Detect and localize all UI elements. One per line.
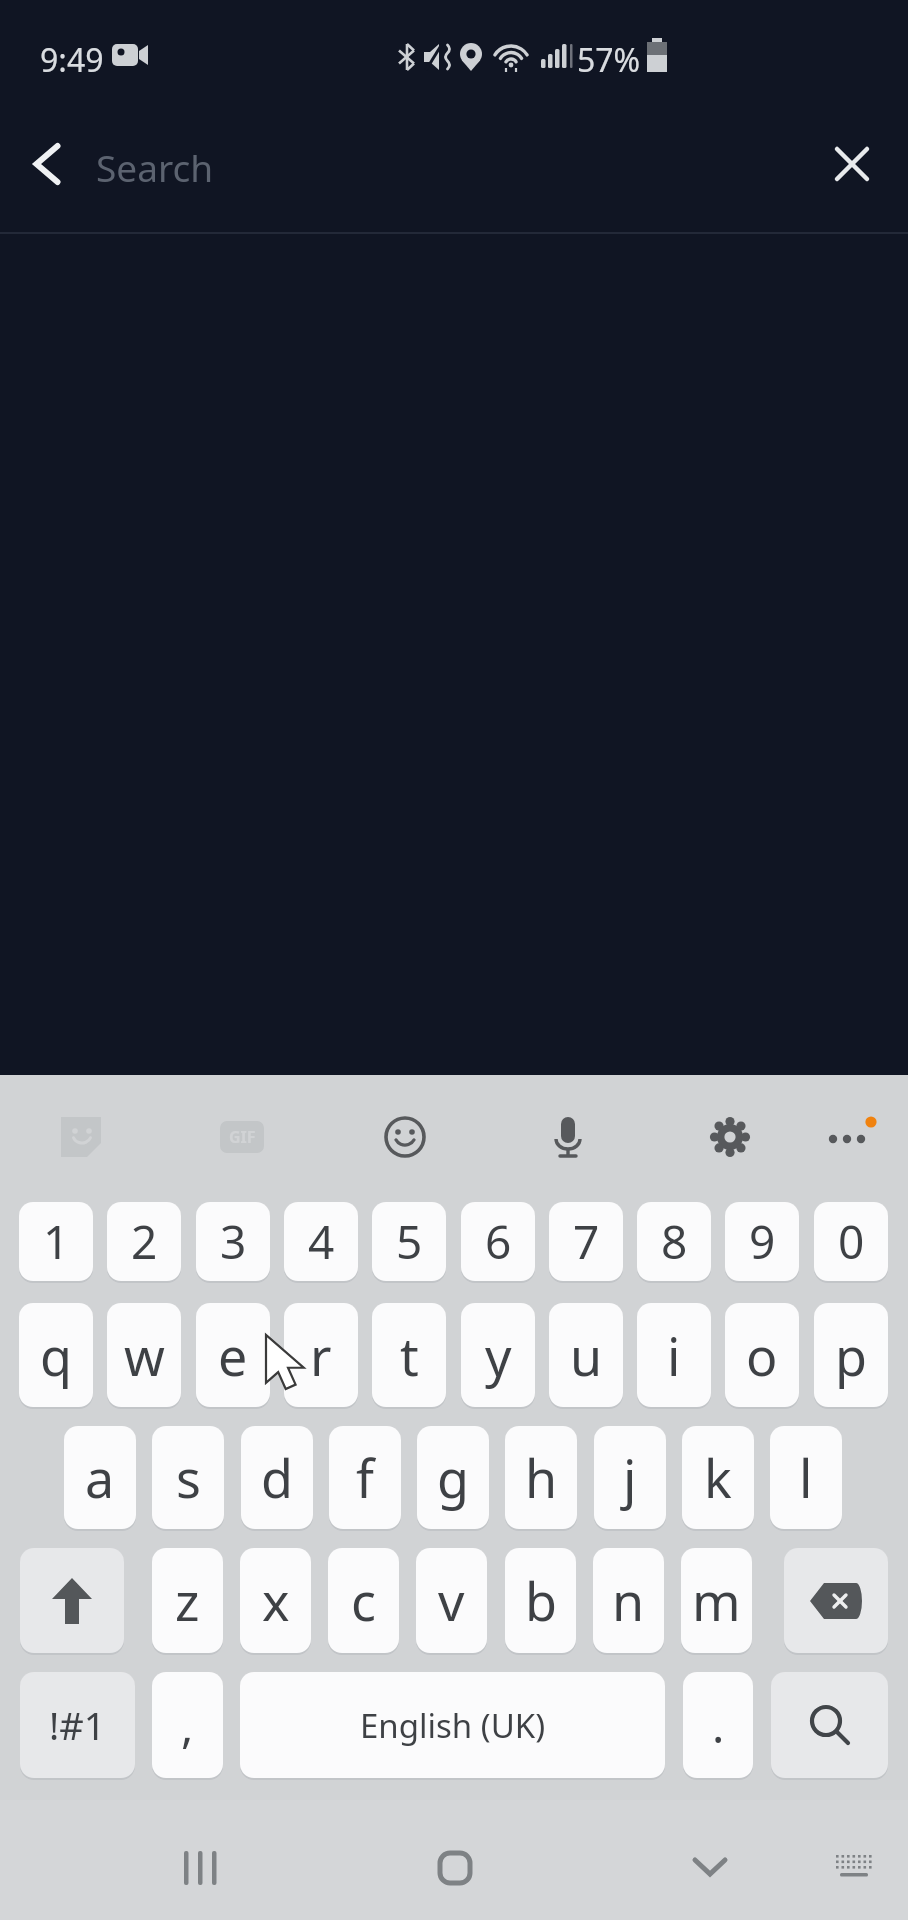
button[interactable] [423, 1836, 487, 1900]
button[interactable] [20, 1548, 124, 1653]
button[interactable]: 4 [284, 1202, 358, 1281]
button[interactable]: k [682, 1426, 754, 1529]
button[interactable]: s [152, 1426, 224, 1529]
staticText: 9:49 [40, 38, 104, 82]
staticText: i [667, 1320, 681, 1391]
button[interactable] [18, 136, 76, 192]
staticText: Search [96, 142, 214, 192]
staticText: !#1 [49, 1699, 106, 1751]
staticText: v [438, 1565, 465, 1636]
staticText: m [692, 1565, 741, 1636]
button[interactable]: n [593, 1548, 664, 1653]
button[interactable] [678, 1836, 742, 1900]
button[interactable]: 8 [637, 1202, 711, 1281]
button[interactable]: g [417, 1426, 489, 1529]
staticText: 3 [220, 1210, 247, 1273]
button[interactable] [817, 1105, 881, 1169]
button[interactable]: w [107, 1303, 181, 1407]
button[interactable]: j [594, 1426, 666, 1529]
button[interactable]: !#1 [20, 1672, 135, 1778]
staticText: 57% [577, 38, 641, 82]
staticText: 0 [838, 1210, 865, 1273]
button[interactable]: u [549, 1303, 623, 1407]
staticText: x [262, 1565, 290, 1636]
button[interactable] [698, 1105, 762, 1169]
button[interactable]: 0 [814, 1202, 888, 1281]
button[interactable] [822, 1836, 886, 1900]
staticText: d [261, 1442, 293, 1513]
staticText: . [712, 1694, 725, 1757]
staticText: f [356, 1442, 374, 1513]
button[interactable]: m [681, 1548, 752, 1653]
staticText: 7 [573, 1210, 600, 1273]
staticText: l [799, 1442, 813, 1513]
button[interactable]: f [329, 1426, 401, 1529]
button[interactable]: 3 [196, 1202, 270, 1281]
button[interactable]: d [241, 1426, 313, 1529]
staticText: a [85, 1442, 115, 1513]
staticText: o [746, 1320, 778, 1391]
staticText: j [623, 1442, 637, 1513]
button[interactable]: t [372, 1303, 446, 1407]
staticText: y [485, 1320, 512, 1391]
staticText: GIF [229, 1126, 256, 1148]
staticText: c [351, 1565, 376, 1636]
button[interactable]: 5 [372, 1202, 446, 1281]
button[interactable]: , [152, 1672, 223, 1778]
staticText: q [40, 1320, 72, 1391]
button[interactable]: z [152, 1548, 223, 1653]
button[interactable]: h [505, 1426, 577, 1529]
staticText: 9 [749, 1210, 776, 1273]
button[interactable]: 9 [725, 1202, 799, 1281]
button[interactable]: o [725, 1303, 799, 1407]
staticText: b [525, 1565, 557, 1636]
button[interactable]: r [284, 1303, 358, 1407]
button[interactable]: English (UK) [240, 1672, 665, 1778]
staticText: r [310, 1320, 332, 1391]
button[interactable]: b [505, 1548, 576, 1653]
staticText: 2 [131, 1210, 158, 1273]
staticText: 1 [43, 1210, 70, 1273]
button[interactable]: e [196, 1303, 270, 1407]
button[interactable] [784, 1548, 888, 1653]
staticText: t [400, 1320, 419, 1391]
button[interactable]: c [328, 1548, 399, 1653]
staticText: 8 [661, 1210, 688, 1273]
staticText: 5 [396, 1210, 423, 1273]
button[interactable]: i [637, 1303, 711, 1407]
button[interactable]: 6 [461, 1202, 535, 1281]
staticText: n [612, 1565, 645, 1636]
staticText: k [704, 1442, 732, 1513]
staticText: g [437, 1442, 469, 1513]
button[interactable] [373, 1105, 437, 1169]
staticText: u [570, 1320, 603, 1391]
button[interactable]: p [814, 1303, 888, 1407]
button[interactable]: l [770, 1426, 842, 1529]
staticText: p [835, 1320, 867, 1391]
button[interactable]: x [240, 1548, 311, 1653]
button[interactable]: y [461, 1303, 535, 1407]
button[interactable] [170, 1836, 234, 1900]
button[interactable]: 1 [19, 1202, 93, 1281]
button[interactable] [49, 1105, 113, 1169]
button[interactable]: 7 [549, 1202, 623, 1281]
button[interactable] [536, 1105, 600, 1169]
button[interactable]: GIF [210, 1105, 274, 1169]
button[interactable]: 2 [107, 1202, 181, 1281]
staticText: , [181, 1694, 194, 1757]
button[interactable] [771, 1672, 888, 1778]
staticText: 4 [308, 1210, 335, 1273]
staticText: w [124, 1320, 165, 1391]
button[interactable] [822, 136, 882, 192]
staticText: z [175, 1565, 200, 1636]
button[interactable]: . [683, 1672, 753, 1778]
staticText: s [176, 1442, 201, 1513]
staticText: English (UK) [360, 1703, 546, 1748]
staticText: e [218, 1320, 248, 1391]
button[interactable]: v [416, 1548, 487, 1653]
button[interactable]: a [64, 1426, 136, 1529]
staticText: h [525, 1442, 558, 1513]
button[interactable]: q [19, 1303, 93, 1407]
staticText: 6 [485, 1210, 512, 1273]
